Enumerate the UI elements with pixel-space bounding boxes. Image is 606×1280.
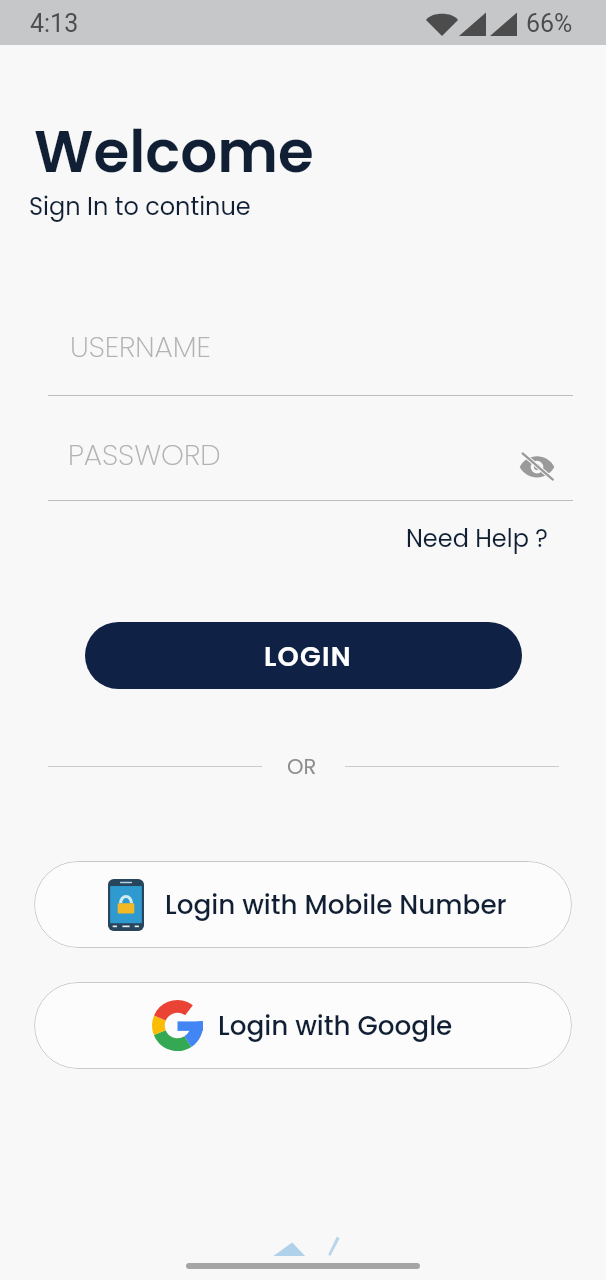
staticText: Login with Mobile Number [165,886,507,923]
staticText: OR [287,752,317,781]
staticText: Sign In to continue [29,190,251,224]
staticText: 4:13 [30,9,79,38]
staticText: 66% [526,9,573,38]
button[interactable]: Need Help ? [406,522,548,556]
button[interactable]: Login with Mobile Number [34,861,572,948]
staticText: Welcome [34,111,314,192]
staticText: LOGIN [264,638,352,676]
staticText: Need Help ? [406,522,548,556]
button[interactable]: Login with Google [34,982,572,1069]
staticText: Login with Google [218,1007,453,1044]
staticText: USERNAME [70,327,211,368]
button[interactable]: Show password [512,443,562,489]
staticText: PASSWORD [68,435,221,476]
button[interactable]: LOGIN [85,622,522,689]
